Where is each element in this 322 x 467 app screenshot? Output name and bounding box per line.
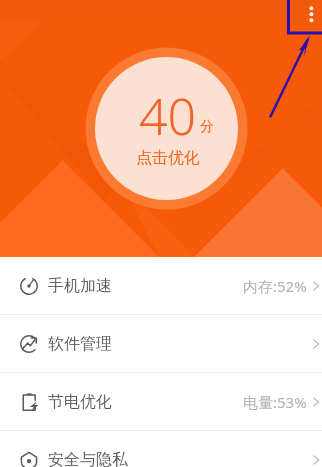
button[interactable]: More options xyxy=(296,0,322,31)
button[interactable]: 40 xyxy=(95,57,238,200)
button[interactable]: 安全与隐私 xyxy=(0,431,322,467)
staticText: 电量:53% xyxy=(243,392,307,412)
button[interactable]: 软件管理 xyxy=(0,315,322,373)
staticText: 软件管理 xyxy=(48,334,112,354)
staticText: 手机加速 xyxy=(48,276,112,296)
staticText: 安全与隐私 xyxy=(48,450,128,467)
button[interactable]: 节电优化 xyxy=(0,373,322,431)
staticText: 40 xyxy=(139,82,197,150)
staticText: 分 xyxy=(200,118,214,136)
staticText: 点击优化 xyxy=(136,148,200,168)
staticText: 内存:52% xyxy=(243,276,307,296)
staticText: 节电优化 xyxy=(48,392,112,412)
button[interactable]: 手机加速 xyxy=(0,257,322,315)
